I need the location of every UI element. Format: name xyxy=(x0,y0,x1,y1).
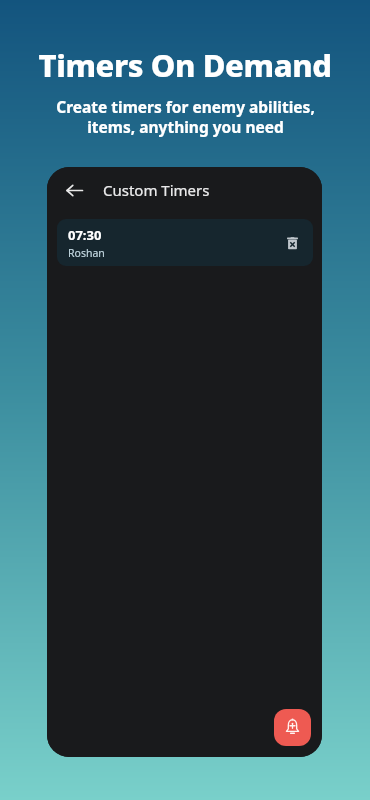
button[interactable]: 07:30 xyxy=(57,219,313,266)
button[interactable]: Delete timer xyxy=(281,232,303,254)
button[interactable]: Add timer xyxy=(274,709,311,746)
staticText: 07:30 xyxy=(68,226,102,244)
staticText: Create timers for enemy abilities, items… xyxy=(56,96,315,138)
button[interactable]: Back xyxy=(57,173,91,207)
staticText: Timers On Demand xyxy=(38,44,332,86)
staticText: Custom Timers xyxy=(103,180,210,200)
staticText: Roshan xyxy=(68,246,105,260)
